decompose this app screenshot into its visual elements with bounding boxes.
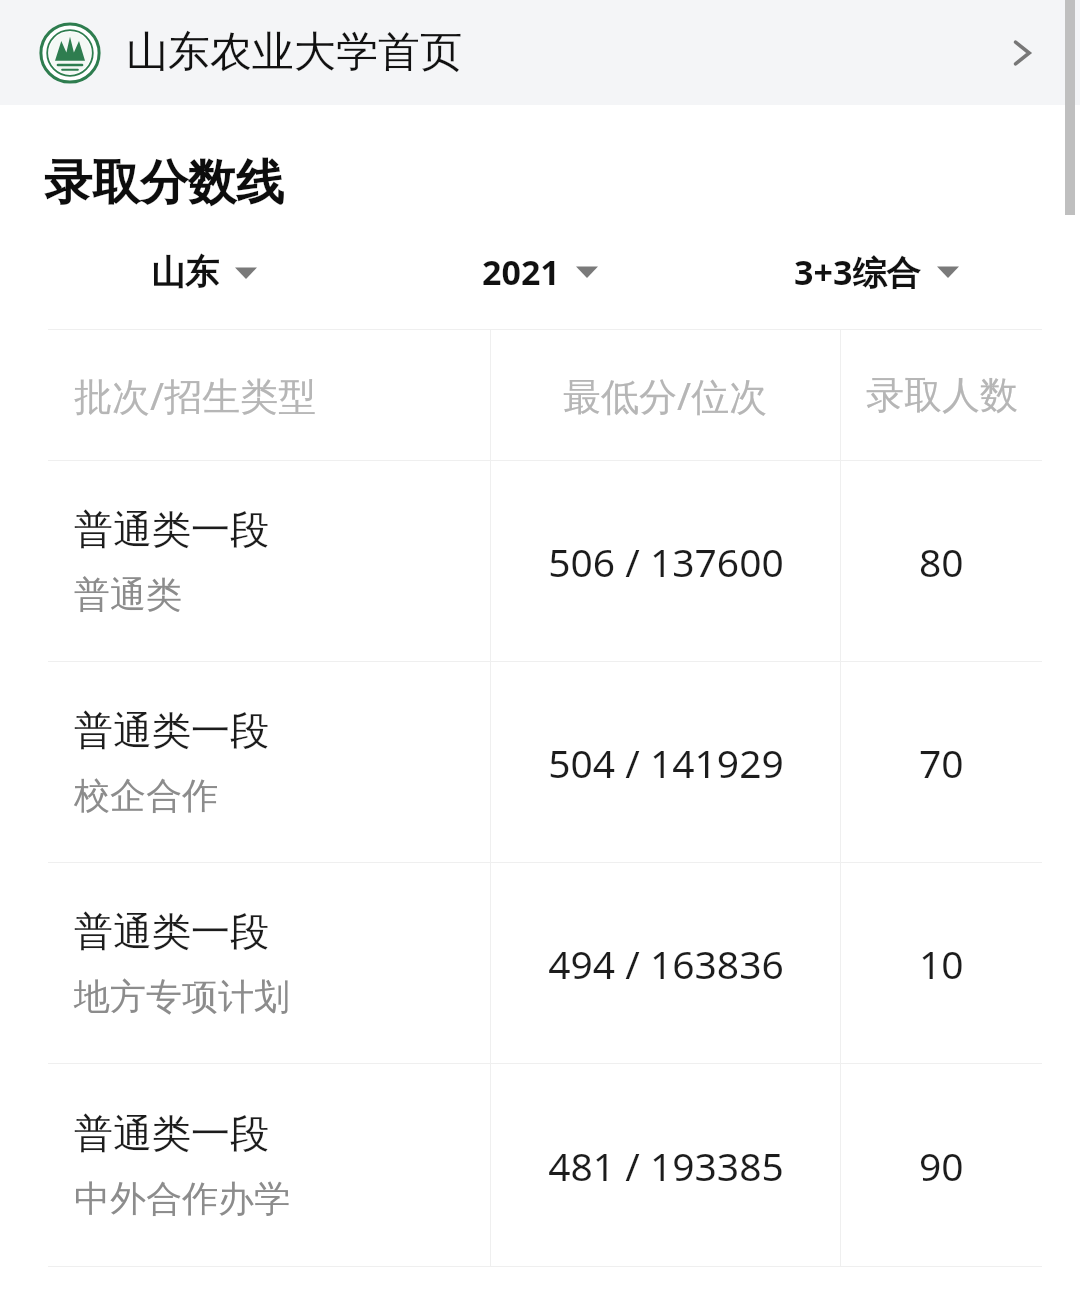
button[interactable]: 普通类一段 [48, 662, 490, 862]
button[interactable]: 2021 [476, 241, 604, 303]
staticText: 70 [919, 736, 964, 789]
staticText: 校企合作 [74, 773, 218, 818]
staticText: 中外合作办学 [74, 1176, 290, 1221]
staticText: 2021 [482, 249, 560, 295]
other: Open homepage [1004, 35, 1040, 71]
staticText: 普通类一段 [74, 505, 269, 554]
button[interactable]: 3+3综合 [788, 241, 965, 303]
button[interactable]: 普通类一段 [48, 863, 490, 1063]
staticText: 录取人数 [866, 371, 1018, 419]
button[interactable]: 山东农业大学首页 [0, 0, 1080, 105]
staticText: 山东农业大学首页 [126, 26, 462, 79]
staticText: 山东 [151, 251, 219, 294]
staticText: 3+3综合 [794, 249, 921, 295]
staticText: 批次/招生类型 [74, 369, 317, 421]
staticText: 506 / 137600 [548, 535, 784, 588]
staticText: 普通类一段 [74, 1109, 269, 1158]
staticText: 504 / 141929 [548, 736, 784, 789]
button[interactable]: 普通类一段 [48, 461, 490, 661]
staticText: 80 [919, 535, 964, 588]
staticText: 普通类 [74, 572, 182, 617]
staticText: 90 [919, 1139, 964, 1192]
button[interactable]: 普通类一段 [48, 1064, 490, 1266]
staticText: 494 / 163836 [548, 937, 784, 990]
staticText: 地方专项计划 [74, 974, 290, 1019]
staticText: 普通类一段 [74, 907, 269, 956]
staticText: 481 / 193385 [548, 1139, 784, 1192]
button[interactable]: 山东 [145, 243, 263, 302]
staticText: 录取分数线 [44, 153, 284, 213]
staticText: 普通类一段 [74, 706, 269, 755]
staticText: 最低分/位次 [563, 369, 768, 421]
staticText: 10 [919, 937, 964, 990]
